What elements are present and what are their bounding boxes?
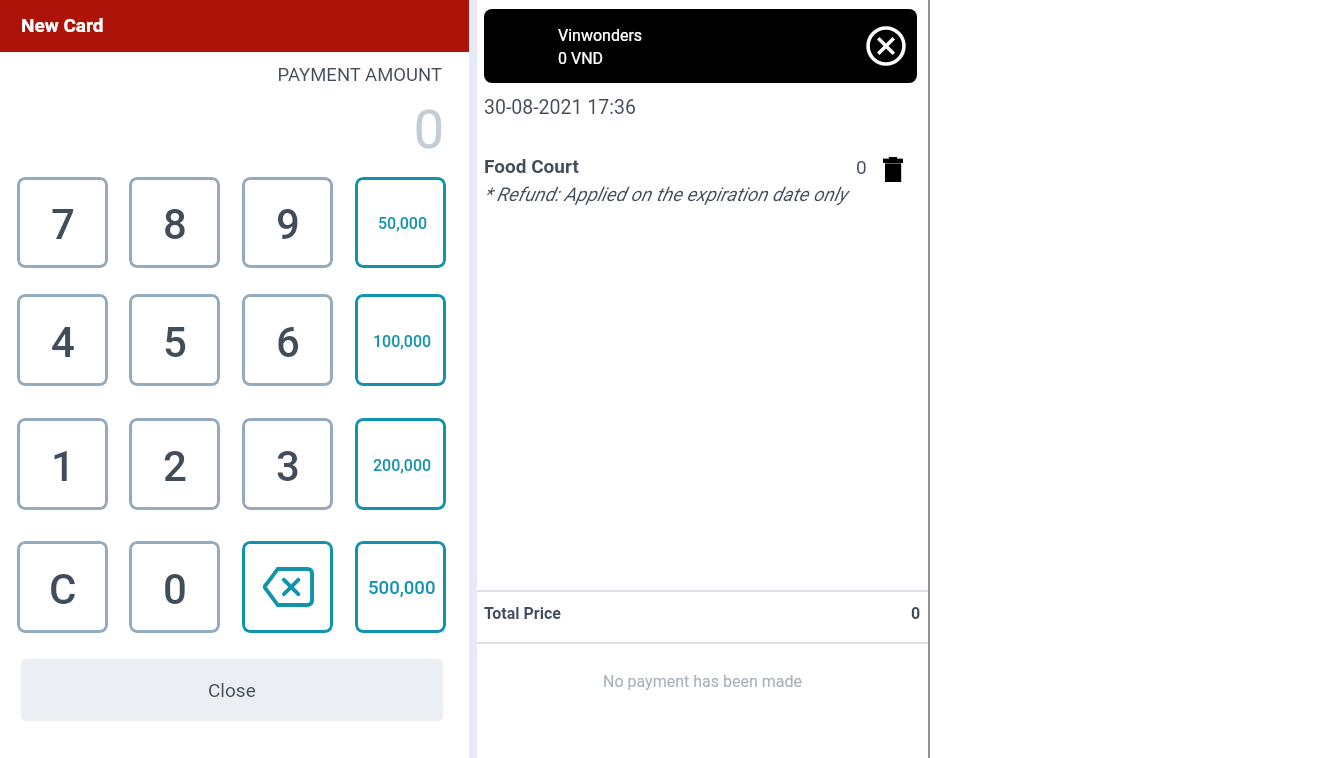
button[interactable]: 9 — [242, 177, 333, 268]
button[interactable]: Delete item — [883, 157, 903, 182]
staticText: Vinwonders — [558, 26, 643, 45]
staticText: 7 — [51, 200, 75, 249]
staticText: 0 — [0, 98, 444, 161]
staticText: C — [49, 565, 77, 614]
button[interactable]: 7 — [17, 177, 108, 268]
button[interactable]: Close — [21, 659, 443, 721]
button[interactable]: 4 — [17, 294, 108, 386]
staticText: 100,000 — [373, 332, 432, 351]
button[interactable]: 6 — [242, 294, 333, 386]
staticText: * Refund: Applied on the expiration date… — [484, 183, 847, 205]
staticText: No payment has been made — [477, 672, 928, 691]
staticText: 0 — [856, 156, 867, 178]
button[interactable]: New Card — [0, 0, 469, 52]
button[interactable]: C — [17, 541, 108, 633]
button[interactable]: 1 — [17, 418, 108, 510]
staticText: 9 — [276, 200, 300, 249]
button[interactable]: 5 — [129, 294, 220, 386]
staticText: 0 — [911, 604, 921, 623]
staticText: 200,000 — [373, 456, 432, 475]
staticText: 4 — [51, 318, 75, 367]
staticText: 0 — [163, 565, 187, 614]
button[interactable]: Remove card — [866, 26, 906, 66]
staticText: Close — [208, 679, 256, 701]
button[interactable]: 2 — [129, 418, 220, 510]
staticText: 30-08-2021 17:36 — [484, 96, 636, 119]
button[interactable]: 3 — [242, 418, 333, 510]
staticText: 8 — [163, 200, 187, 249]
button[interactable]: Vinwonders — [484, 9, 917, 83]
button[interactable]: 0 — [129, 541, 220, 633]
staticText: 0 VND — [558, 49, 604, 68]
staticText: New Card — [21, 14, 104, 36]
staticText: 3 — [276, 442, 300, 491]
staticText: 500,000 — [368, 577, 436, 599]
staticText: 5 — [163, 318, 187, 367]
button[interactable]: 500,000 — [355, 541, 446, 633]
button[interactable]: 50,000 — [355, 177, 446, 268]
staticText: 50,000 — [378, 214, 427, 233]
staticText: 6 — [276, 318, 300, 367]
button[interactable]: 200,000 — [355, 418, 446, 510]
staticText: Total Price — [484, 604, 561, 623]
staticText: 1 — [51, 442, 75, 491]
staticText: PAYMENT AMOUNT — [0, 64, 442, 86]
button[interactable]: 8 — [129, 177, 220, 268]
staticText: 2 — [163, 442, 187, 491]
button[interactable]: 100,000 — [355, 294, 446, 386]
button[interactable]: Backspace — [242, 541, 333, 633]
staticText: Food Court — [484, 155, 579, 177]
